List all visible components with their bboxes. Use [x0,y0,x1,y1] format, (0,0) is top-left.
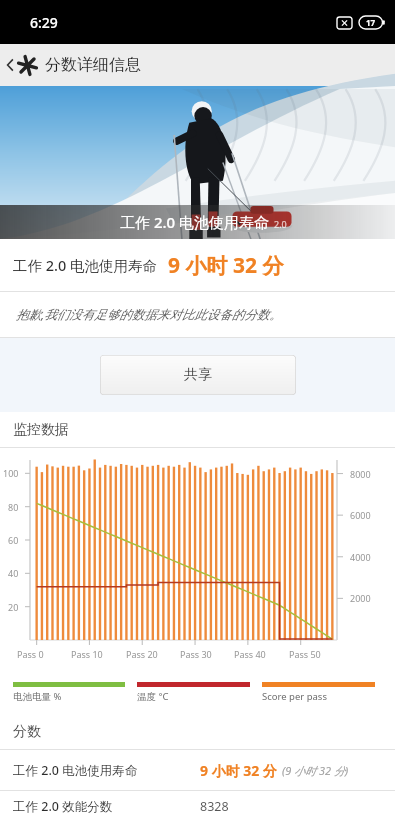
staticText: 工作 2.0 电池使用寿命 [120,212,270,232]
staticText: 20 [8,601,19,613]
staticText: 工作 2.0 效能分数 [13,798,113,815]
staticText: 监控数据 [13,421,69,439]
staticText: 80 [8,501,19,513]
staticText: 100 [3,467,19,479]
staticText: 2000 [350,592,371,604]
staticText: 分数 [13,723,41,741]
staticText: Pass 10 [71,648,103,660]
staticText: Pass 40 [234,648,266,660]
staticText: (9 小时 32 分) [282,763,349,778]
staticText: 6:29 [30,13,58,32]
staticText: Pass 20 [126,648,158,660]
staticText: 共享 [184,366,212,384]
staticText: 4000 [350,551,371,563]
staticText: Pass 0 [17,648,44,660]
staticText: 分数详细信息 [45,55,141,75]
staticText: 8000 [350,468,371,480]
staticText: 8328 [200,798,229,815]
button[interactable]: 工作 2.0 电池使用寿命 [0,750,395,790]
staticText: 40 [8,567,19,579]
staticText: 6000 [350,509,371,521]
staticText: 工作 2.0 电池使用寿命 [13,255,158,275]
staticText: 2.0 [274,218,287,230]
staticText: 电池电量 % [13,690,62,703]
staticText: 9 小时 32 分 [168,251,284,280]
staticText: 60 [8,534,19,546]
staticText: Pass 50 [289,648,321,660]
staticText: Pass 30 [180,648,212,660]
button[interactable]: 工作 2.0 效能分数 [0,791,395,822]
staticText: 9 小时 32 分 [200,761,277,780]
staticText: 抱歉,我们没有足够的数据来对比此设备的分数。 [16,306,282,323]
staticText: 温度 °C [137,690,169,703]
staticText: 工作 2.0 电池使用寿命 [13,762,138,779]
staticText: 17 [366,17,376,28]
button[interactable]: Back [0,44,395,86]
staticText: Score per pass [262,690,327,703]
button[interactable]: 共享 [100,355,296,395]
